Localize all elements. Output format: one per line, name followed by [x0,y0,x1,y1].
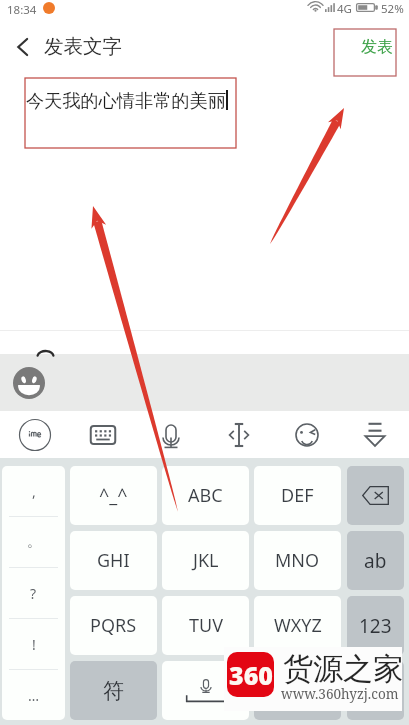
staticText: ABC [188,483,223,508]
staticText: ^_^ [99,483,128,508]
button[interactable]: Move cursor [205,411,273,458]
button[interactable]: TUV [162,596,249,655]
button[interactable]: ? [2,568,65,618]
button[interactable]: 发表 [361,37,393,57]
staticText: TUV [189,613,223,638]
staticText: MNO [275,548,320,573]
button[interactable]: Emoji [273,411,341,458]
staticText: … [28,686,40,705]
button[interactable]: … [2,670,65,720]
staticText: ? [30,584,37,603]
staticText: ! [32,635,36,654]
button[interactable] [347,661,404,720]
staticText: www.360hyzj.com [281,685,399,703]
button[interactable]: ! [2,619,65,669]
button[interactable]: MNO [254,531,341,590]
button[interactable]: Space [162,661,249,720]
button[interactable]: Voice input [137,411,205,458]
staticText: 123 [359,613,392,639]
staticText: 4G [337,1,352,17]
button[interactable]: 。 [2,517,65,567]
staticText: DEF [281,483,314,508]
staticText: 360 [229,658,273,692]
button[interactable]: 123 [347,596,404,655]
button[interactable]: Emoji [12,366,45,399]
staticText: 。 [27,533,41,551]
button[interactable] [254,661,341,720]
staticText: 发表文字 [44,34,122,59]
button[interactable]: Back [4,29,40,65]
button[interactable]: 符 [70,661,157,720]
staticText: 发表 [361,37,393,57]
staticText: WXYZ [274,613,322,638]
staticText: 18:34 [7,2,37,18]
staticText: PQRS [90,613,137,638]
button[interactable]: GHI [70,531,157,590]
button[interactable]: Delete [347,466,404,525]
button[interactable]: ABC [162,466,249,525]
button[interactable]: DEF [254,466,341,525]
staticText: GHI [97,548,130,573]
staticText: 52% [381,1,404,17]
button[interactable]: ab [347,531,404,590]
button[interactable]: Hide keyboard [341,411,409,458]
button[interactable]: WXYZ [254,596,341,655]
staticText: 符 [103,678,124,704]
staticText: , [32,482,36,501]
staticText: 今天我的心情非常的美丽 [26,89,227,112]
button[interactable]: , [2,466,65,516]
button[interactable]: PQRS [70,596,157,655]
staticText: JKL [193,548,219,573]
button[interactable]: JKL [162,531,249,590]
button[interactable]: Keyboard layout [69,411,137,458]
button[interactable]: Input method [0,411,69,458]
staticText: 货源之家 [283,650,403,688]
staticText: ab [364,548,387,574]
button[interactable]: ^_^ [70,466,157,525]
